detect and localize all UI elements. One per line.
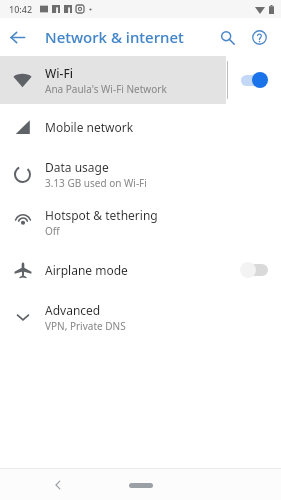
button[interactable]: Back xyxy=(0,20,34,54)
staticText: VPN, Private DNS xyxy=(45,319,126,333)
button[interactable]: Mobile network xyxy=(0,104,281,150)
staticText: 3.13 GB used on Wi-Fi xyxy=(45,176,147,190)
button[interactable]: Hotspot & tethering xyxy=(0,198,281,246)
staticText: Airplane mode xyxy=(45,262,128,278)
staticText: Mobile network xyxy=(45,119,134,135)
button[interactable]: Wi-Fi on xyxy=(239,71,271,89)
staticText: Off xyxy=(45,224,60,238)
button[interactable]: Data usage xyxy=(0,150,281,198)
button[interactable]: Home xyxy=(115,474,167,496)
staticText: Network & internet xyxy=(45,27,184,47)
staticText: Ana Paula's Wi-Fi Network xyxy=(45,82,167,96)
button[interactable]: Airplane mode xyxy=(0,246,281,293)
button[interactable]: Wi-Fi xyxy=(0,56,281,104)
staticText: Hotspot & tethering xyxy=(45,207,158,223)
staticText: 10:42 xyxy=(9,3,33,15)
button[interactable]: Search xyxy=(211,21,243,53)
button[interactable]: Help xyxy=(243,21,275,53)
button[interactable]: Advanced xyxy=(0,293,281,341)
staticText: Advanced xyxy=(45,302,101,318)
button[interactable]: Airplane mode off xyxy=(239,261,271,279)
staticText: Data usage xyxy=(45,159,109,175)
button[interactable]: Back xyxy=(45,472,71,498)
staticText: Wi-Fi xyxy=(45,65,73,81)
